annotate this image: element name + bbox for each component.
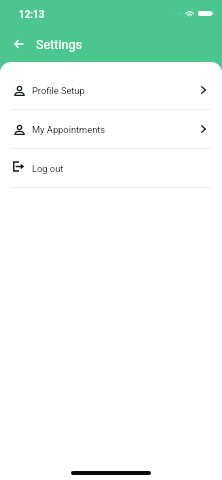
staticText: Profile Setup [32, 85, 85, 96]
button[interactable]: My Appointments [0, 110, 222, 148]
staticText: My Appointments [32, 124, 106, 135]
staticText: Log out [32, 163, 64, 174]
button[interactable]: Log out [0, 149, 222, 187]
button[interactable]: Back [5, 31, 31, 57]
staticText: Settings [36, 37, 82, 52]
staticText: 12:13 [19, 9, 45, 21]
button[interactable]: Profile Setup [0, 71, 222, 109]
